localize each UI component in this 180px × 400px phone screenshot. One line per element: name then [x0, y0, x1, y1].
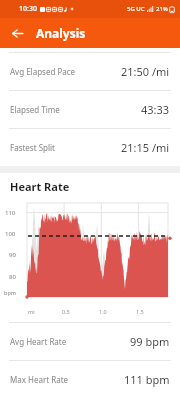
staticText: 1.0: [99, 308, 107, 315]
staticText: 90: [9, 251, 16, 259]
button[interactable]: Elapsed Time: [0, 91, 180, 128]
staticText: Avg Heart Rate: [10, 336, 67, 347]
staticText: Analysis: [36, 25, 86, 41]
button[interactable]: Fastest Split: [0, 129, 180, 166]
staticText: 99 bpm: [130, 334, 170, 349]
staticText: 1.5: [136, 308, 144, 315]
staticText: Heart Rate: [10, 179, 70, 194]
staticText: 0.5: [62, 308, 70, 315]
staticText: 5G UC: [127, 5, 145, 13]
staticText: Max Heart Rate: [10, 374, 69, 385]
staticText: 100: [5, 230, 16, 238]
staticText: 80: [9, 273, 16, 281]
staticText: 110: [5, 209, 16, 217]
staticText: 21:15 /mi: [121, 140, 170, 155]
staticText: 10:30: [19, 4, 37, 14]
staticText: 43:33: [141, 102, 170, 117]
staticText: Fastest Split: [10, 142, 55, 153]
button[interactable]: Max Heart Rate: [0, 361, 180, 398]
staticText: bpm: [4, 289, 17, 296]
button[interactable]: Avg Heart Rate: [0, 323, 180, 360]
button[interactable]: Back: [5, 21, 29, 45]
staticText: Elapsed Time: [10, 104, 60, 115]
staticText: 21%: [156, 5, 168, 13]
staticText: Avg Elapsed Pace: [10, 66, 76, 77]
staticText: mi: [28, 308, 35, 315]
staticText: 111 bpm: [124, 372, 170, 387]
button[interactable]: Avg Elapsed Pace: [0, 53, 180, 90]
staticText: 21:50 /mi: [121, 64, 170, 79]
